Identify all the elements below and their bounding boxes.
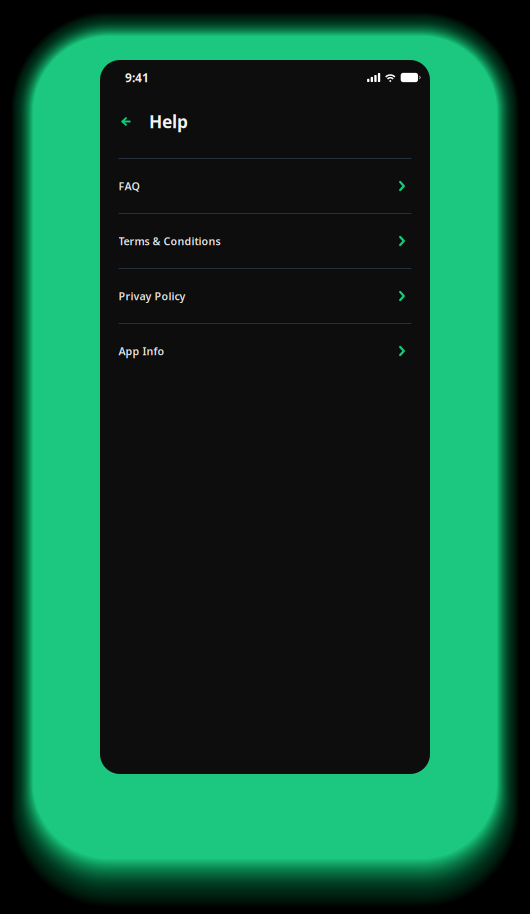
staticText: 9:41 bbox=[125, 69, 149, 85]
staticText: App Info bbox=[118, 344, 164, 358]
button[interactable]: App Info bbox=[118, 323, 411, 378]
staticText: Terms & Conditions bbox=[118, 234, 220, 248]
button[interactable]: Privay Policy bbox=[118, 268, 411, 323]
staticText: Privay Policy bbox=[118, 289, 185, 303]
staticText: Help bbox=[149, 110, 188, 133]
button[interactable]: Back bbox=[114, 108, 138, 134]
staticText: FAQ bbox=[118, 179, 139, 193]
button[interactable]: FAQ bbox=[118, 158, 411, 213]
button[interactable]: Terms & Conditions bbox=[118, 213, 411, 268]
